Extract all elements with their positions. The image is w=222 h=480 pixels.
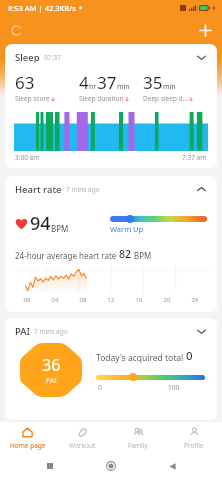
staticText: 00 (13, 296, 41, 304)
staticText: 63 (15, 71, 35, 94)
staticText: 4 (79, 71, 89, 94)
button[interactable]: Refresh (6, 20, 26, 40)
staticText: 24 (181, 296, 209, 304)
button[interactable]: Profile (166, 423, 222, 450)
staticText: 94 (30, 211, 51, 236)
button[interactable]: Add (194, 19, 216, 41)
button[interactable]: Back (161, 455, 183, 477)
staticText: 20 (153, 296, 181, 304)
staticText: 100 (168, 383, 180, 392)
staticText: 82 (119, 247, 132, 261)
staticText: BPM (51, 223, 69, 234)
staticText: 37 (97, 71, 117, 94)
staticText: 12 (97, 296, 125, 304)
staticText: 7 mins ago (34, 327, 68, 336)
staticText: Warm Up (110, 224, 144, 234)
staticText: Sleep score (15, 94, 50, 103)
staticText: 07:37 (44, 53, 61, 62)
button[interactable]: PAI (5, 321, 217, 341)
staticText: Sleep (15, 51, 40, 64)
staticText: 3:00 am (15, 153, 40, 162)
staticText: 8:53 AM | 42.3KB/s (8, 3, 76, 13)
button[interactable]: Home page (0, 423, 55, 450)
staticText: 36 (42, 354, 61, 376)
staticText: Heart rate (15, 183, 62, 196)
staticText: Deep sleep d... (143, 94, 188, 103)
staticText: 08 (69, 296, 97, 304)
button[interactable]: Home (100, 455, 122, 477)
staticText: 7:37 am (182, 153, 207, 162)
staticText: 16 (125, 296, 153, 304)
staticText: Sleep duration (79, 94, 124, 103)
button[interactable]: Workout (55, 423, 110, 450)
staticText: Today's acquired total (96, 352, 186, 364)
staticText: PAI (15, 325, 30, 338)
staticText: 24-hour average heart rate (15, 250, 119, 261)
staticText: PAI (46, 376, 57, 386)
button[interactable]: Family (110, 423, 166, 450)
staticText: 0 (98, 383, 102, 392)
staticText: hr (89, 82, 97, 92)
staticText: min (163, 82, 176, 92)
staticText: 0 (186, 348, 193, 364)
staticText: Home page (10, 441, 46, 450)
button[interactable]: Recents (39, 455, 61, 477)
button[interactable]: Heart rate (5, 179, 217, 199)
staticText: 35 (143, 71, 163, 94)
staticText: 04 (41, 296, 69, 304)
staticText: Family (128, 441, 148, 450)
staticText: 7 mins ago (66, 185, 100, 194)
staticText: min (117, 82, 130, 92)
button[interactable]: Sleep (5, 47, 217, 67)
staticText: Profile (184, 441, 204, 450)
staticText: BPM (132, 250, 152, 261)
staticText: Workout (69, 441, 96, 450)
